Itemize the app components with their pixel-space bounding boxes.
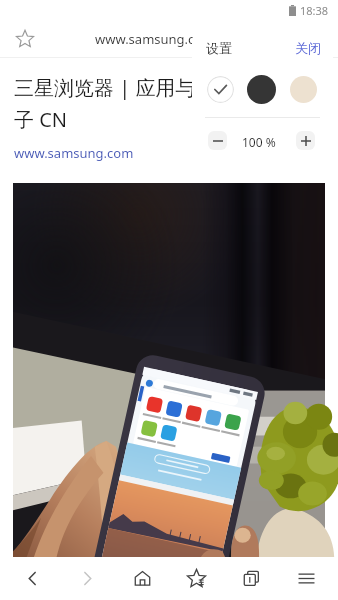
button[interactable]: Zoom out: [208, 131, 227, 150]
staticText: www.samsung.co: [95, 30, 203, 48]
button[interactable]: Bookmarks: [173, 557, 219, 600]
button[interactable]: Bookmark: [12, 26, 38, 52]
button[interactable]: Forward: [64, 557, 110, 600]
staticText: 100 %: [242, 134, 276, 150]
staticText: 三星浏览器 | 应用与服务 | 三星电 子 CN: [14, 74, 317, 133]
button[interactable]: Home: [119, 557, 165, 600]
staticText: www.samsung.com: [14, 144, 134, 162]
button[interactable]: Tabs: [228, 557, 274, 600]
button[interactable]: Zoom in: [296, 131, 315, 150]
staticText: 18:38: [300, 3, 329, 18]
button[interactable]: Back: [9, 557, 55, 600]
button[interactable]: Dark theme: [247, 75, 276, 104]
staticText: 关闭: [295, 40, 321, 56]
button[interactable]: Menu: [283, 557, 329, 600]
button[interactable]: Sepia theme: [290, 76, 317, 103]
staticText: 设置: [206, 40, 232, 56]
button[interactable]: 关闭: [295, 40, 321, 56]
button[interactable]: Light theme: [207, 76, 234, 103]
